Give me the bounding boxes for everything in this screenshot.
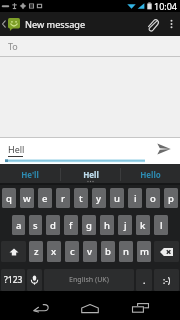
button[interactable]: Hell: [0, 138, 147, 159]
button[interactable]: g: [82, 215, 96, 235]
button[interactable]: s: [29, 215, 42, 235]
staticText: English (UK): [69, 275, 109, 285]
staticText: .: [143, 274, 146, 286]
staticText: p: [168, 192, 174, 205]
button[interactable]: k: [136, 215, 150, 235]
button[interactable]: q: [2, 188, 16, 208]
staticText: h: [104, 219, 110, 232]
button[interactable]: Back: [15, 291, 65, 320]
button[interactable]: c: [65, 241, 79, 262]
button[interactable]: w: [20, 188, 34, 208]
staticText: n: [123, 245, 129, 258]
staticText: g: [86, 219, 92, 232]
button[interactable]: He'll: [0, 164, 60, 185]
button[interactable]: Shift: [1, 241, 26, 262]
staticText: t: [79, 192, 83, 205]
staticText: i: [134, 192, 137, 205]
staticText: f: [69, 219, 73, 232]
button[interactable]: .: [136, 269, 152, 291]
staticText: r: [61, 192, 66, 205]
button[interactable]: z: [29, 241, 43, 262]
staticText: u: [114, 192, 120, 205]
button[interactable]: Hell: [61, 164, 120, 185]
staticText: He'll: [21, 169, 39, 180]
staticText: Hello: [140, 169, 161, 180]
staticText: a: [16, 219, 22, 232]
button[interactable]: Recent apps: [115, 291, 165, 320]
button[interactable]: d: [46, 215, 60, 235]
staticText: j: [124, 219, 127, 232]
staticText: d: [50, 219, 56, 232]
staticText: w: [23, 192, 31, 205]
button[interactable]: r: [56, 188, 70, 208]
staticText: ?123: [4, 274, 23, 286]
staticText: Hell: [8, 143, 25, 155]
staticText: o: [150, 192, 156, 205]
button[interactable]: f: [64, 215, 78, 235]
button[interactable]: j: [118, 215, 132, 235]
staticText: z: [34, 245, 39, 258]
staticText: :-): [163, 275, 171, 286]
staticText: c: [70, 245, 75, 258]
staticText: e: [42, 192, 48, 205]
button[interactable]: Navigate up: [0, 12, 24, 36]
button[interactable]: More options: [164, 12, 178, 36]
button[interactable]: x: [47, 241, 61, 262]
staticText: m: [140, 245, 149, 258]
staticText: b: [105, 245, 111, 258]
button[interactable]: e: [38, 188, 52, 208]
button[interactable]: n: [119, 241, 133, 262]
staticText: k: [140, 219, 146, 232]
staticText: Hell: [83, 169, 99, 180]
button[interactable]: o: [146, 188, 160, 208]
staticText: 10:04: [154, 0, 178, 12]
staticText: To: [8, 40, 18, 52]
button[interactable]: Send: [147, 138, 180, 159]
button[interactable]: ?123: [1, 269, 25, 291]
staticText: s: [33, 219, 38, 232]
button[interactable]: m: [137, 241, 151, 262]
button[interactable]: English (UK): [44, 269, 134, 291]
staticText: v: [87, 245, 93, 258]
button[interactable]: v: [83, 241, 97, 262]
button[interactable]: To: [0, 36, 180, 56]
button[interactable]: a: [12, 215, 25, 235]
button[interactable]: p: [164, 188, 178, 208]
staticText: x: [51, 245, 57, 258]
button[interactable]: Voice input: [27, 269, 42, 291]
button[interactable]: y: [92, 188, 106, 208]
staticText: y: [96, 192, 102, 205]
button[interactable]: :-): [154, 269, 179, 291]
staticText: l: [160, 219, 163, 232]
button[interactable]: t: [74, 188, 88, 208]
button[interactable]: b: [101, 241, 115, 262]
button[interactable]: Delete: [154, 241, 179, 262]
button[interactable]: i: [128, 188, 142, 208]
button[interactable]: l: [154, 215, 168, 235]
button[interactable]: Home: [65, 291, 115, 320]
button[interactable]: u: [110, 188, 124, 208]
button[interactable]: h: [100, 215, 114, 235]
staticText: New message: [25, 18, 86, 31]
button[interactable]: Hello: [121, 164, 180, 185]
button[interactable]: Attach: [140, 12, 164, 36]
staticText: q: [6, 192, 12, 205]
